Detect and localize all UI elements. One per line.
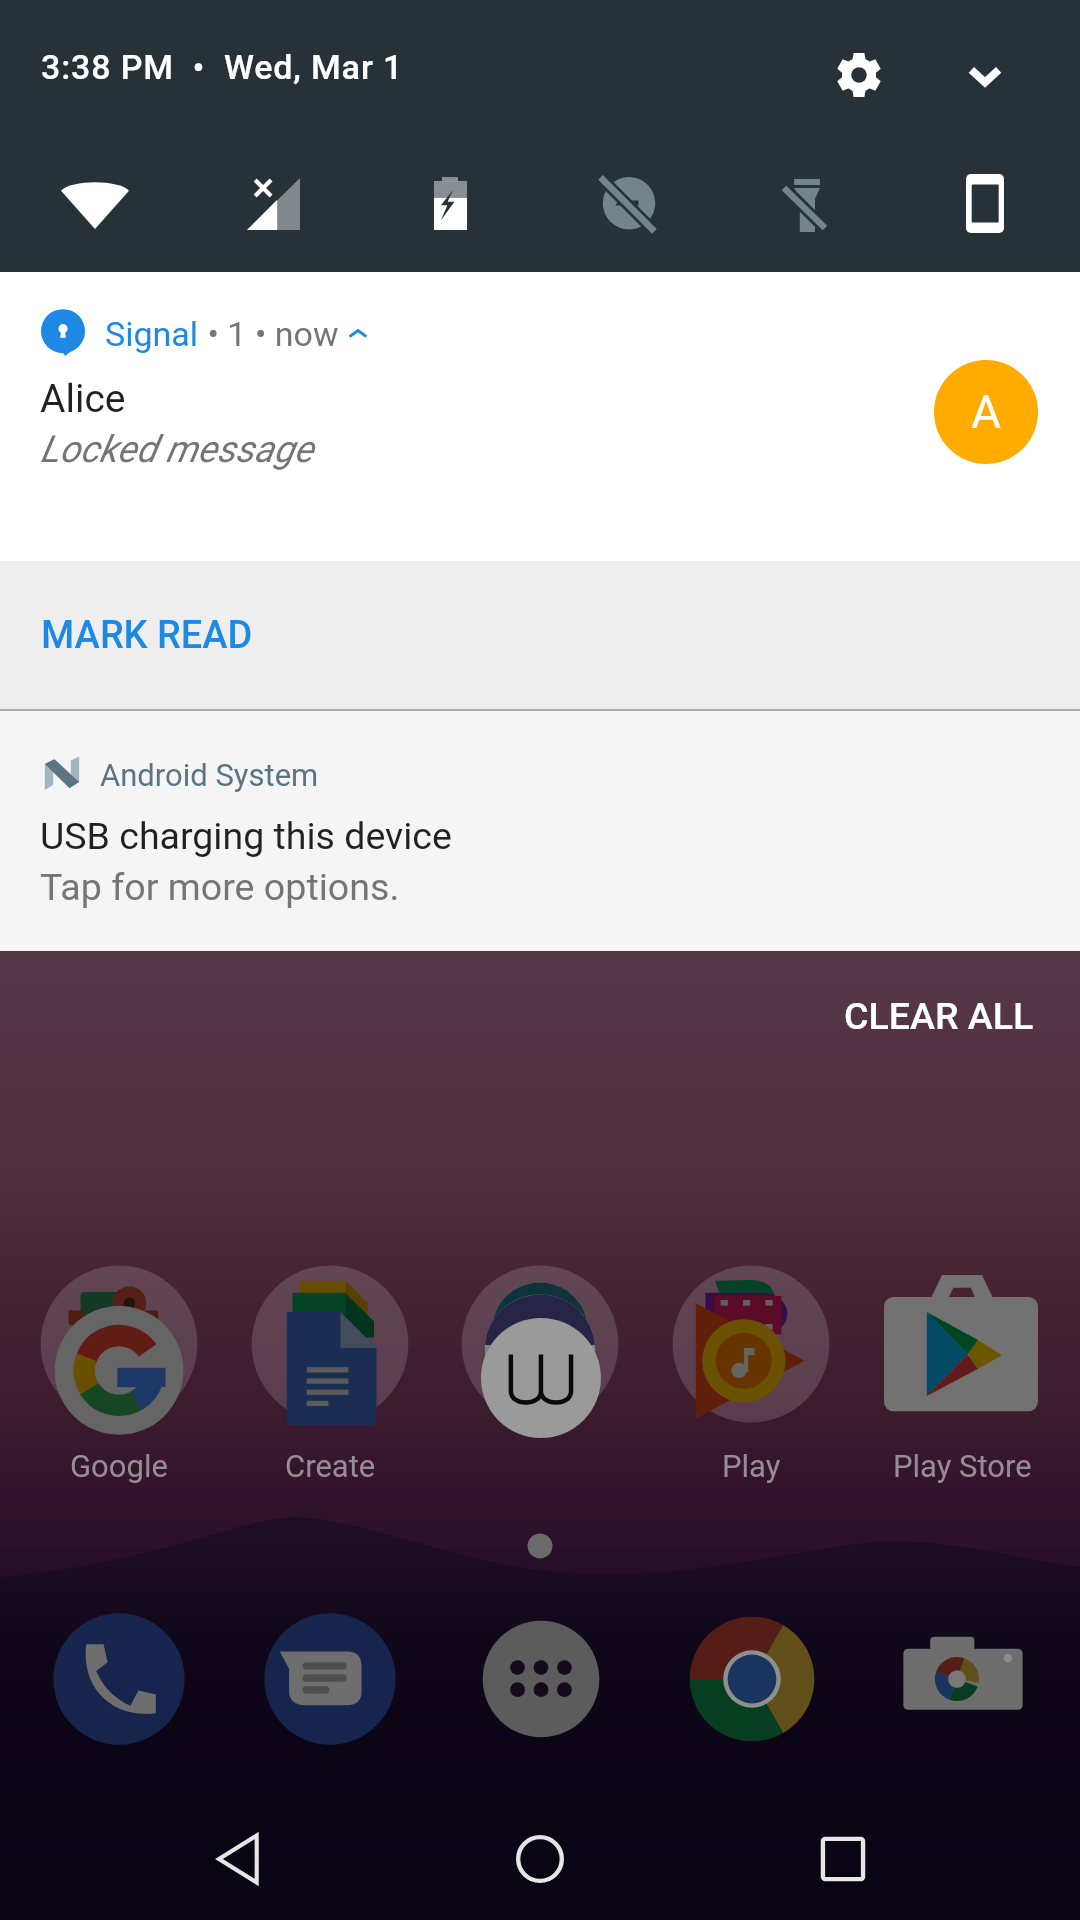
staticText: A	[971, 385, 1002, 439]
button[interactable]: Settings	[820, 36, 898, 114]
staticText: 3:38 PM • Wed, Mar 1	[41, 47, 404, 87]
staticText: USB charging this device	[40, 814, 452, 858]
staticText: Android System	[100, 757, 319, 793]
button[interactable]: Back	[180, 1800, 298, 1918]
button[interactable]: Do not disturb	[580, 155, 678, 253]
staticText: CLEAR ALL	[844, 994, 1034, 1038]
staticText: Alice	[40, 376, 126, 422]
staticText: Play Store	[893, 1448, 1032, 1484]
button[interactable]: Messages	[263, 1612, 397, 1746]
staticText: Locked message	[40, 427, 314, 471]
staticText: MARK READ	[41, 613, 253, 658]
button[interactable]: Signal	[0, 272, 1080, 561]
button[interactable]: Phone	[52, 1612, 186, 1746]
staticText: Google	[70, 1448, 168, 1484]
button[interactable]: Home	[481, 1800, 599, 1918]
button[interactable]: Alice avatar	[934, 360, 1038, 464]
button[interactable]: Battery charging	[402, 155, 500, 253]
button[interactable]: CLEAR ALL	[0, 951, 1080, 1081]
button[interactable]: Google	[39, 1264, 199, 1424]
button[interactable]: Android System	[0, 709, 1080, 951]
button[interactable]: Recents	[784, 1800, 902, 1918]
staticText: Signal	[105, 314, 199, 354]
button[interactable]: All apps	[474, 1612, 608, 1746]
button[interactable]: Wi-Fi	[46, 155, 144, 253]
button[interactable]: Play	[671, 1264, 831, 1424]
staticText: Play	[722, 1448, 781, 1484]
staticText: Create	[285, 1448, 376, 1484]
button[interactable]: Play Store	[882, 1264, 1042, 1424]
button[interactable]: Flashlight off	[758, 155, 856, 253]
staticText: Tap for more options.	[40, 865, 400, 909]
button[interactable]: Chrome	[685, 1612, 819, 1746]
button[interactable]: MARK READ	[0, 561, 1080, 709]
staticText: • 1 • now	[199, 314, 347, 354]
button[interactable]: Mobile data off	[224, 155, 322, 253]
button[interactable]: Camera	[896, 1612, 1030, 1746]
button[interactable]: Auto rotate	[936, 155, 1034, 253]
button[interactable]: Wire	[460, 1264, 620, 1424]
button[interactable]: Collapse quick settings	[946, 36, 1024, 114]
button[interactable]: Create	[250, 1264, 410, 1424]
